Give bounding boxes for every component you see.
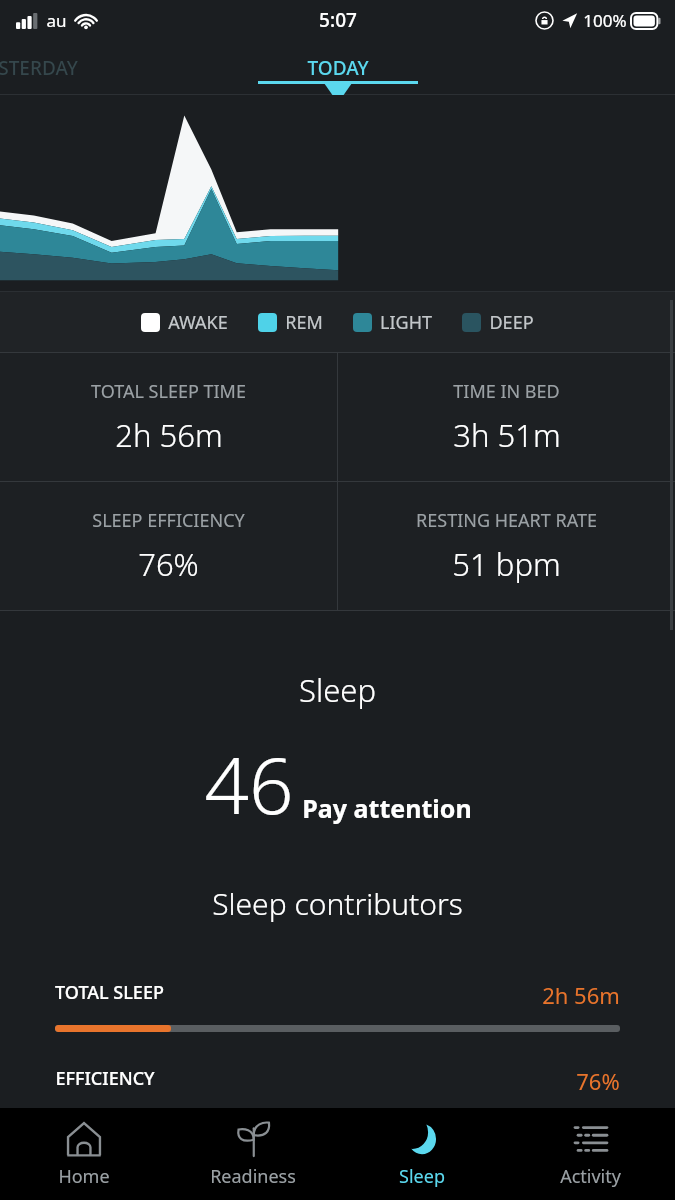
staticText: Sleep <box>299 669 376 711</box>
staticText: Home <box>58 1164 110 1189</box>
staticText: LIGHT <box>380 310 432 335</box>
button[interactable]: RESTING HEART RATE <box>338 482 675 610</box>
staticText: TOTAL SLEEP TIME <box>91 379 246 404</box>
staticText: Pay attention <box>302 791 472 825</box>
staticText: 51 bpm <box>452 543 561 585</box>
staticText: EFFICIENCY <box>55 1066 155 1091</box>
other: Readiness <box>234 1120 272 1158</box>
staticText: DEEP <box>489 310 534 335</box>
staticText: TODAY <box>307 55 369 81</box>
staticText: Sleep <box>399 1164 445 1189</box>
staticText: 76% <box>576 1066 620 1096</box>
staticText: TOTAL SLEEP <box>55 980 164 1005</box>
staticText: AWAKE <box>168 310 228 335</box>
button[interactable]: STERDAY <box>0 40 200 95</box>
button[interactable]: TOTAL SLEEP TIME <box>0 353 337 481</box>
staticText: 2h 56m <box>115 414 223 456</box>
button[interactable]: TODAY <box>238 40 438 95</box>
staticText: 5:07 <box>319 7 357 33</box>
staticText: Activity <box>560 1164 621 1189</box>
other: Activity <box>572 1120 610 1158</box>
staticText: RESTING HEART RATE <box>416 508 597 533</box>
button[interactable]: SLEEP EFFICIENCY <box>0 482 337 610</box>
button[interactable]: Home <box>0 1108 168 1200</box>
staticText: 2h 56m <box>542 980 620 1010</box>
button[interactable]: Sleep <box>337 1108 506 1200</box>
staticText: au <box>46 9 67 32</box>
staticText: STERDAY <box>0 55 78 81</box>
staticText: TIME IN BED <box>453 379 560 404</box>
button[interactable]: Readiness <box>168 1108 337 1200</box>
staticText: 100% <box>583 9 627 32</box>
staticText: SLEEP EFFICIENCY <box>92 508 245 533</box>
button[interactable]: EFFICIENCY <box>0 1066 675 1096</box>
staticText: Sleep contributors <box>212 883 463 924</box>
staticText: 3h 51m <box>453 414 561 456</box>
button[interactable]: Activity <box>506 1108 675 1200</box>
other: Home <box>65 1120 103 1158</box>
staticText: 76% <box>138 543 199 585</box>
button[interactable]: TIME IN BED <box>338 353 675 481</box>
staticText: Readiness <box>210 1164 296 1189</box>
button[interactable]: TOTAL SLEEP <box>0 980 675 1032</box>
staticText: 46 <box>204 731 294 837</box>
other: Sleep <box>403 1120 441 1158</box>
staticText: REM <box>285 310 323 335</box>
